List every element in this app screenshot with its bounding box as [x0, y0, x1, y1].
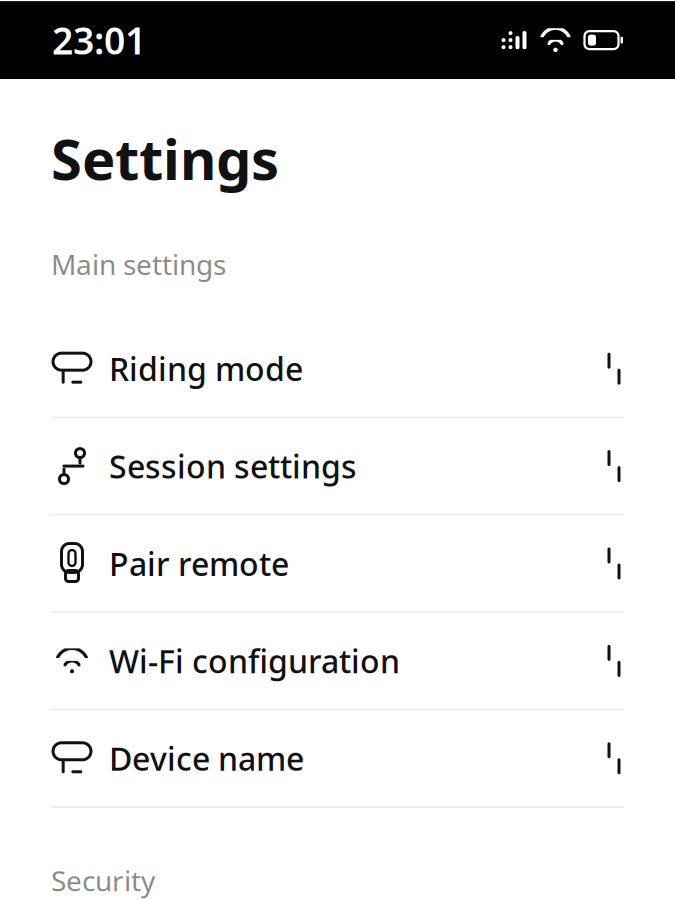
- staticText: Main settings: [51, 245, 226, 283]
- button[interactable]: Pair remote: [0, 515, 675, 613]
- button[interactable]: Riding mode: [0, 321, 675, 418]
- button[interactable]: Session settings: [0, 418, 675, 515]
- staticText: Wi-Fi configuration: [109, 640, 400, 682]
- staticText: Session settings: [109, 445, 357, 487]
- button[interactable]: Wi-Fi configuration: [0, 613, 675, 710]
- staticText: Settings: [51, 121, 279, 195]
- staticText: 23:01: [52, 15, 146, 65]
- button[interactable]: Device name: [0, 710, 675, 808]
- staticText: Riding mode: [109, 347, 303, 390]
- staticText: Pair remote: [109, 542, 289, 585]
- staticText: Device name: [109, 737, 304, 779]
- staticText: Security: [51, 862, 155, 899]
